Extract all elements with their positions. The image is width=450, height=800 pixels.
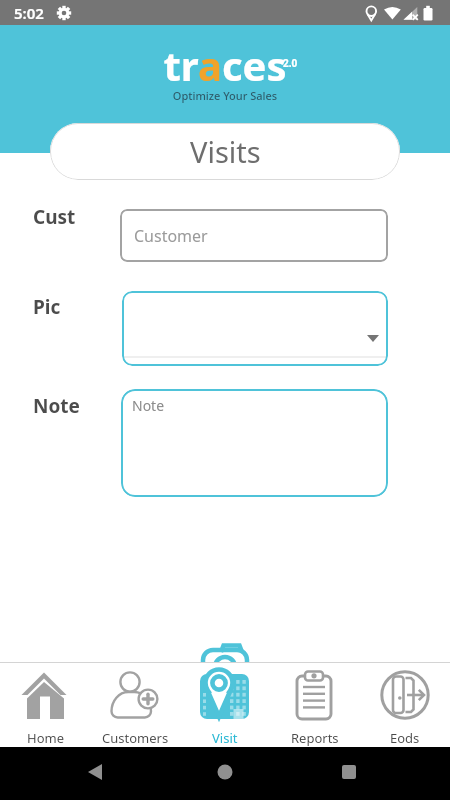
staticText: traces — [0, 38, 450, 92]
button[interactable]: Eods — [360, 669, 450, 747]
staticText: Visits — [190, 132, 261, 171]
button[interactable] — [122, 291, 388, 366]
staticText: Visit — [212, 729, 238, 747]
staticText: Reports — [291, 729, 339, 747]
staticText: Note — [33, 393, 80, 419]
staticText: Eods — [390, 729, 420, 747]
button[interactable]: Home — [0, 669, 90, 747]
button[interactable]: Note — [121, 389, 388, 497]
button[interactable]: Visit — [180, 669, 270, 747]
staticText: Customer — [134, 225, 208, 247]
staticText: 2.0 — [283, 56, 298, 70]
staticText: Cust — [33, 204, 76, 230]
staticText: Pic — [33, 294, 61, 320]
staticText: Note — [132, 396, 165, 415]
button[interactable]: Visits — [50, 123, 400, 180]
staticText: Customers — [102, 729, 169, 747]
staticText: Home — [27, 729, 64, 747]
button[interactable]: Customer — [120, 209, 388, 262]
staticText: 5:02 — [14, 3, 44, 23]
staticText: Optimize Your Sales — [0, 88, 450, 103]
button[interactable]: Customers — [90, 669, 180, 747]
button[interactable]: Reports — [270, 669, 360, 747]
